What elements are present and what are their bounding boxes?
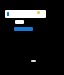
button[interactable] (5, 10, 46, 18)
button[interactable] (15, 20, 24, 24)
button[interactable] (14, 27, 33, 31)
